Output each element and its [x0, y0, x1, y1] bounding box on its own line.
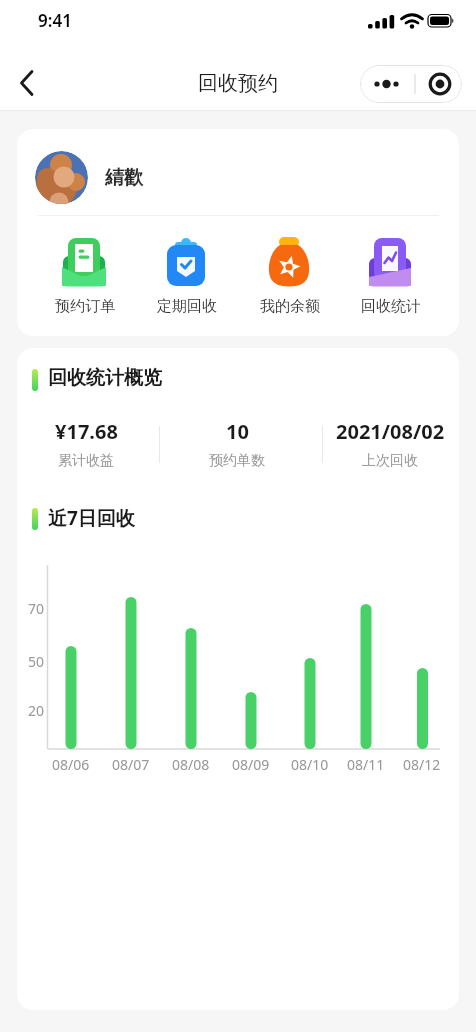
staticText: 08/09	[232, 755, 270, 774]
button[interactable]: 定期回收	[139, 236, 235, 316]
staticText: 预约单数	[209, 452, 265, 470]
staticText: 綪歡	[105, 166, 143, 190]
staticText: 近7日回收	[48, 505, 135, 531]
button[interactable]: 回收统计	[343, 236, 439, 316]
button[interactable]: 綪歡	[35, 151, 459, 204]
button[interactable]: 预约订单	[37, 236, 133, 316]
staticText: 08/06	[52, 755, 90, 774]
staticText: 08/07	[112, 755, 150, 774]
staticText: 08/08	[172, 755, 210, 774]
staticText: 9:41	[38, 9, 72, 32]
staticText: 预约订单	[55, 297, 115, 316]
staticText: 70	[28, 599, 45, 618]
staticText: 08/10	[291, 755, 329, 774]
staticText: 回收预约	[198, 71, 278, 96]
button[interactable]	[10, 62, 50, 104]
staticText: 08/11	[347, 755, 385, 774]
staticText: 10	[226, 418, 249, 445]
staticText: 2021/08/02	[336, 418, 445, 445]
staticText: 上次回收	[362, 452, 418, 470]
staticText: 50	[28, 652, 45, 671]
staticText: 20	[28, 701, 45, 720]
staticText: ¥17.68	[55, 418, 118, 445]
staticText: 我的余额	[260, 297, 320, 316]
staticText: 回收统计	[361, 297, 421, 316]
button[interactable]: 我的余额	[242, 236, 338, 316]
staticText: 08/12	[403, 755, 441, 774]
staticText: 回收统计概览	[48, 366, 162, 390]
staticText: 定期回收	[157, 297, 217, 316]
staticText: 累计收益	[58, 452, 114, 470]
button[interactable]	[360, 65, 462, 103]
